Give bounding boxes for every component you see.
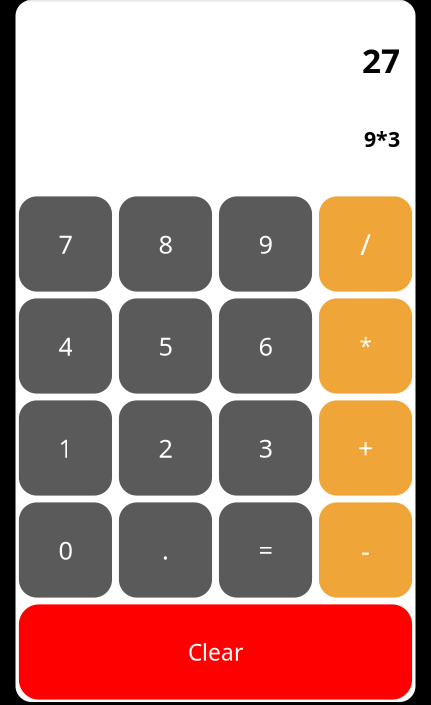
button[interactable]: 8 bbox=[119, 196, 212, 292]
button[interactable]: 7 bbox=[19, 196, 112, 292]
staticText: 6 bbox=[258, 329, 272, 363]
staticText: 5 bbox=[158, 329, 172, 363]
staticText: 1 bbox=[58, 431, 72, 465]
button[interactable]: . bbox=[119, 502, 212, 598]
staticText: 0 bbox=[58, 533, 72, 567]
staticText: . bbox=[162, 533, 169, 567]
button[interactable]: + bbox=[319, 400, 412, 496]
staticText: 27 bbox=[362, 38, 400, 83]
button[interactable]: 4 bbox=[19, 298, 112, 394]
staticText: 2 bbox=[158, 431, 172, 465]
staticText: 8 bbox=[158, 227, 172, 261]
button[interactable]: = bbox=[219, 502, 312, 598]
staticText: = bbox=[258, 533, 272, 567]
button[interactable]: 2 bbox=[119, 400, 212, 496]
staticText: / bbox=[360, 224, 371, 263]
button[interactable]: 0 bbox=[19, 502, 112, 598]
button[interactable]: 1 bbox=[19, 400, 112, 496]
staticText: 9 bbox=[258, 227, 272, 261]
staticText: 7 bbox=[58, 227, 72, 261]
staticText: - bbox=[361, 531, 370, 569]
button[interactable]: Clear bbox=[19, 604, 412, 700]
button[interactable]: - bbox=[319, 502, 412, 598]
staticText: * bbox=[359, 331, 371, 361]
staticText: 3 bbox=[258, 431, 272, 465]
button[interactable]: / bbox=[319, 196, 412, 292]
button[interactable]: 6 bbox=[219, 298, 312, 394]
staticText: 9*3 bbox=[364, 125, 400, 153]
staticText: Clear bbox=[188, 637, 243, 667]
button[interactable]: 3 bbox=[219, 400, 312, 496]
button[interactable]: 9 bbox=[219, 196, 312, 292]
staticText: + bbox=[358, 430, 373, 466]
staticText: 4 bbox=[58, 329, 72, 363]
button[interactable]: * bbox=[319, 298, 412, 394]
button[interactable]: 5 bbox=[119, 298, 212, 394]
